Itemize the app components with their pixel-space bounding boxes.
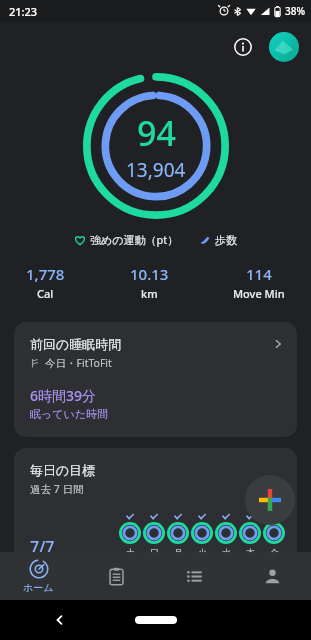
staticText: Cal [37,286,54,301]
staticText: 94 [137,110,176,156]
button[interactable]: 1,778 [26,264,65,301]
staticText: 13,904 [126,157,186,183]
button[interactable]: Browse [155,552,233,600]
button[interactable]: Home [135,616,177,624]
staticText: 前回の睡眠時間 [30,336,271,352]
staticText: 金 [270,547,279,558]
staticText: 7/7 [30,536,55,558]
staticText: 毎日の目標 [30,462,96,478]
button[interactable]: ホーム [0,552,77,600]
button[interactable]: 強めの運動（pt） [74,232,179,247]
staticText: Move Min [233,286,285,301]
staticText: 21:23 [9,4,38,19]
staticText: 水 [222,547,231,558]
staticText: 木 [246,547,255,558]
staticText: 6時間39分 [30,386,97,405]
staticText: 土 [126,547,135,558]
staticText: 月 [174,547,183,558]
staticText: ホーム [23,581,54,594]
staticText: 10.13 [130,264,169,284]
staticText: 114 [246,264,272,284]
button[interactable]: 毎日の目標 [14,448,297,578]
staticText: 強めの運動（pt） [90,232,179,247]
button[interactable]: 10.13 [130,264,169,301]
staticText: 過去 7 日間 [30,482,84,496]
button[interactable]: Add activity [245,475,295,525]
button[interactable]: 114 [233,264,285,301]
button[interactable]: 歩数 [199,233,237,247]
button[interactable]: Back [48,608,72,632]
staticText: 歩数 [215,233,237,247]
staticText: 眠っていた時間 [30,407,109,421]
button[interactable]: Journal [77,552,155,600]
staticText: 日 [150,547,159,558]
staticText: 1,778 [26,264,65,284]
staticText: 38% [285,4,305,18]
button[interactable]: 前回の睡眠時間 [14,322,297,437]
button[interactable]: Information [225,29,261,65]
staticText: km [141,286,158,301]
staticText: 火 [198,547,207,558]
button[interactable]: Account [269,32,299,62]
button[interactable]: Profile [233,552,311,600]
staticText: 今日・FitToFit [45,356,112,370]
